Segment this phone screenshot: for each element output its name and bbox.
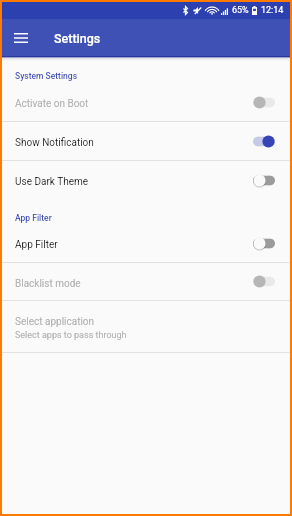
button[interactable]: Blacklist mode (2, 263, 290, 300)
staticText: 65% (232, 5, 249, 16)
staticText: Select application (15, 316, 95, 328)
staticText: Settings (54, 31, 101, 46)
button[interactable]: Select application (2, 301, 290, 352)
button[interactable]: Open navigation menu (7, 24, 35, 52)
staticText: Use Dark Theme (15, 176, 89, 188)
staticText: Show Notification (15, 137, 94, 149)
button[interactable]: Activate on Boot (2, 83, 290, 121)
staticText: System Settings (15, 71, 78, 81)
staticText: Select apps to pass through (15, 330, 127, 341)
staticText: App Filter (15, 213, 52, 223)
button[interactable]: Show Notification (2, 122, 290, 160)
staticText: Activate on Boot (15, 98, 89, 110)
staticText: App Filter (15, 239, 58, 251)
button[interactable]: Use Dark Theme (2, 161, 290, 199)
button[interactable]: App Filter (2, 224, 290, 262)
staticText: Blacklist mode (15, 278, 81, 290)
staticText: 12:14 (261, 5, 284, 16)
